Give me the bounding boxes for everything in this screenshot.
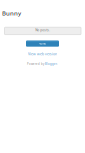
button[interactable]: View web version [28, 52, 57, 56]
staticText: No posts. [35, 28, 50, 32]
staticText: View web version [28, 52, 57, 56]
staticText: . [57, 62, 58, 66]
staticText: Home [38, 42, 46, 45]
button[interactable]: Blogger [45, 62, 57, 66]
staticText: Bunny [2, 9, 21, 17]
staticText: Powered by [27, 62, 45, 66]
staticText: Blogger [45, 62, 57, 66]
button[interactable]: Home [26, 41, 59, 47]
